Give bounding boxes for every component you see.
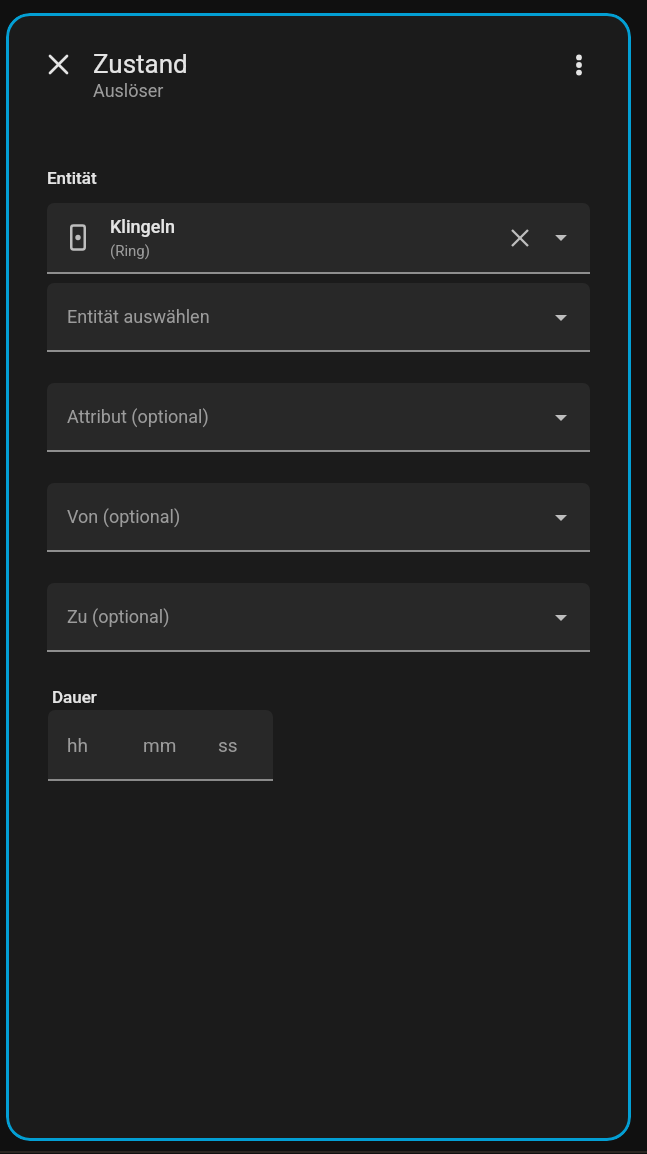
button[interactable]: Show dropdown: [544, 221, 578, 255]
button[interactable]: More options: [558, 44, 600, 86]
staticText: Attribut (optional): [67, 406, 209, 427]
staticText: Entität: [47, 168, 97, 188]
staticText: Zustand: [93, 49, 188, 79]
button[interactable]: Zu (optional): [47, 583, 590, 652]
staticText: Entität auswählen: [67, 306, 210, 327]
button[interactable]: Entität auswählen: [47, 283, 590, 352]
button[interactable]: hh: [48, 710, 273, 781]
button[interactable]: Klingeln: [47, 203, 590, 274]
staticText: Von (optional): [67, 506, 181, 527]
staticText: Zu (optional): [67, 606, 170, 627]
button[interactable]: Attribut (optional): [47, 383, 590, 452]
staticText: (Ring): [110, 242, 150, 260]
staticText: mm: [143, 734, 177, 756]
button[interactable]: Close: [37, 43, 79, 85]
button[interactable]: Von (optional): [47, 483, 590, 552]
staticText: hh: [67, 734, 88, 756]
button[interactable]: Clear: [495, 218, 544, 258]
staticText: Auslöser: [93, 80, 164, 101]
staticText: ss: [218, 734, 238, 756]
staticText: Klingeln: [110, 216, 176, 237]
staticText: Dauer: [52, 687, 97, 707]
